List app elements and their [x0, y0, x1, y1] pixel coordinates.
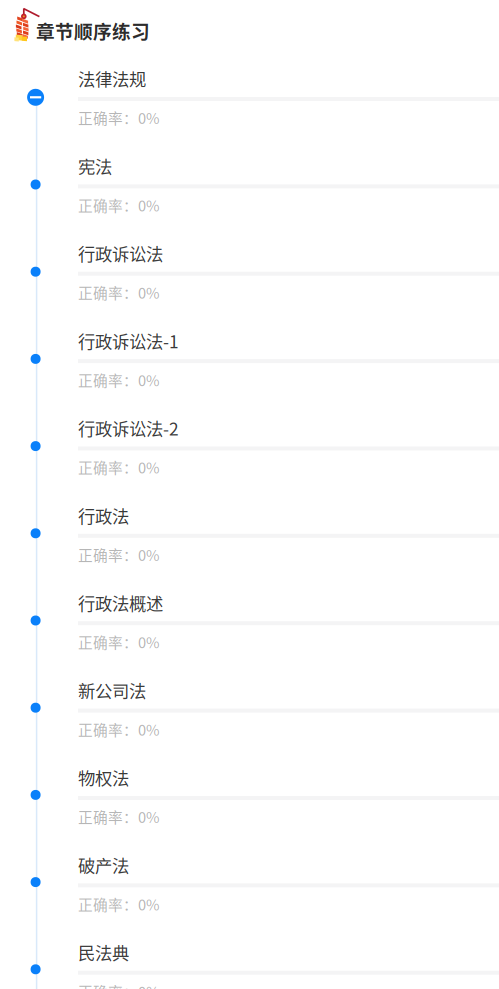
staticText: 物权法: [78, 765, 129, 790]
staticText: 正确率：0%: [78, 719, 160, 740]
staticText: 正确率：0%: [78, 631, 160, 652]
staticText: 法律法规: [78, 66, 146, 91]
staticText: 行政法: [78, 503, 129, 528]
staticText: 正确率：0%: [78, 893, 160, 915]
staticText: 正确率：0%: [78, 981, 160, 989]
staticText: 正确率：0%: [78, 457, 160, 478]
staticText: 新公司法: [78, 678, 146, 703]
staticText: 行政诉讼法-1: [78, 328, 179, 353]
button[interactable]: 行政诉讼法-1: [0, 322, 499, 409]
staticText: 宪法: [78, 153, 112, 178]
button[interactable]: 破产法: [0, 846, 499, 934]
staticText: 正确率：0%: [78, 806, 160, 827]
button[interactable]: 行政诉讼法-2: [0, 409, 499, 497]
staticText: 正确率：0%: [78, 107, 160, 128]
staticText: 正确率：0%: [78, 194, 160, 216]
staticText: 行政诉讼法-2: [78, 415, 179, 441]
staticText: 民法典: [78, 940, 129, 965]
button[interactable]: 行政法: [0, 497, 499, 584]
staticText: 章节顺序练习: [36, 17, 150, 44]
button[interactable]: 行政诉讼法: [0, 235, 499, 322]
button[interactable]: 法律法规: [0, 60, 499, 147]
staticText: 正确率：0%: [78, 282, 160, 303]
button[interactable]: 宪法: [0, 147, 499, 235]
staticText: 破产法: [78, 852, 129, 877]
staticText: 行政法概述: [78, 590, 163, 615]
button[interactable]: 收起章节: [27, 88, 45, 106]
button[interactable]: 物权法: [0, 759, 499, 846]
button[interactable]: 行政法概述: [0, 584, 499, 672]
staticText: 正确率：0%: [78, 369, 160, 390]
staticText: 正确率：0%: [78, 544, 160, 565]
button[interactable]: 新公司法: [0, 672, 499, 759]
staticText: 行政诉讼法: [78, 241, 163, 266]
button[interactable]: 民法典: [0, 934, 499, 989]
